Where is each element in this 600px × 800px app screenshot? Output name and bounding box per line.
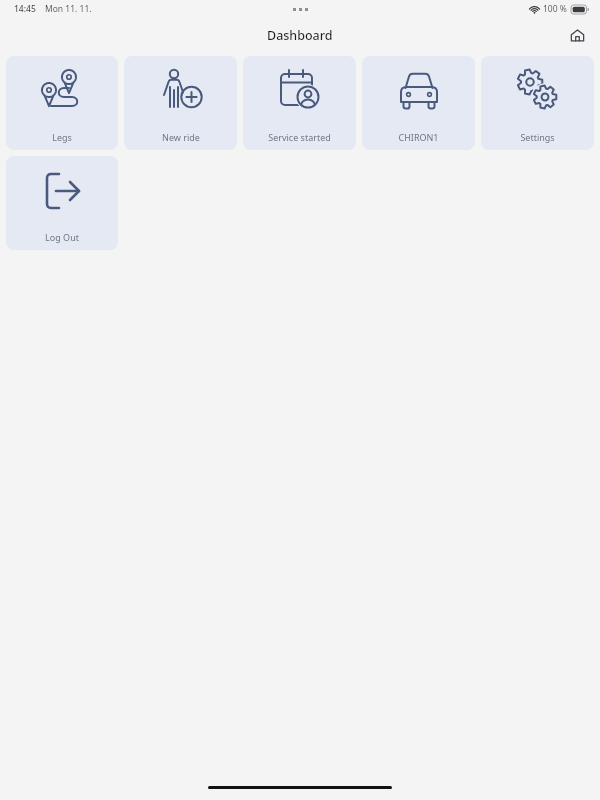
staticText: 14:45 [14, 3, 36, 15]
staticText: CHIRON1 [398, 131, 439, 143]
staticText: Legs [52, 131, 72, 143]
button[interactable]: Home [563, 21, 591, 49]
staticText: 100 % [543, 3, 567, 15]
staticText: Dashboard [267, 27, 333, 44]
button[interactable]: CHIRON1 [362, 56, 475, 150]
button[interactable]: Legs [6, 56, 118, 150]
button[interactable]: New ride [124, 56, 237, 150]
staticText: Service started [268, 131, 331, 143]
button[interactable]: Service started [243, 56, 356, 150]
staticText: Settings [520, 131, 555, 143]
button[interactable]: Log Out [6, 156, 118, 250]
button[interactable]: Settings [481, 56, 594, 150]
staticText: Mon 11. 11. [45, 3, 92, 15]
staticText: Log Out [45, 231, 79, 243]
staticText: New ride [162, 131, 200, 143]
